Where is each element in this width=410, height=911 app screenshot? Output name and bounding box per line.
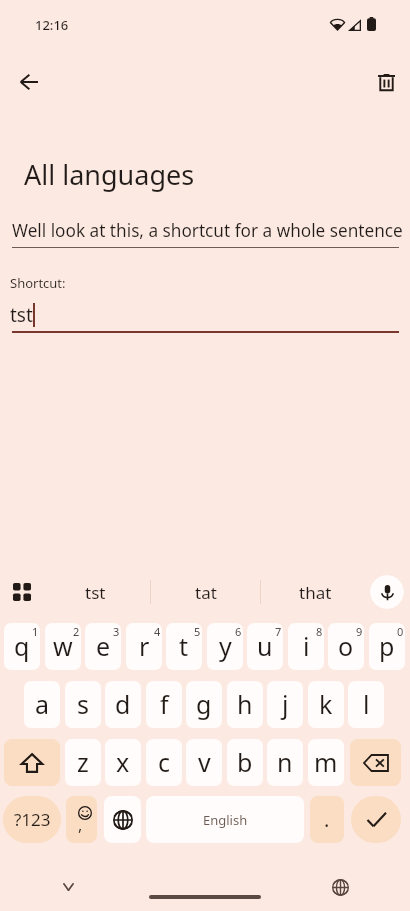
button[interactable]: . [310,796,344,843]
staticText: 8 [316,624,323,639]
button[interactable]: Switch input method [324,871,357,904]
staticText: 3 [113,624,120,639]
button[interactable]: Enter [351,796,401,843]
button[interactable]: d [105,681,141,728]
staticText: o [338,629,354,663]
button[interactable]: Back [5,58,53,106]
staticText: e [96,629,111,663]
button[interactable]: u [247,623,283,670]
button[interactable]: tst [40,571,150,613]
staticText: 7 [275,624,282,639]
button[interactable]: Change keyboard language [104,796,141,843]
staticText: s [77,687,89,721]
button[interactable]: l [348,681,384,728]
button[interactable]: w [45,623,81,670]
staticText: All languages [24,156,195,193]
staticText: q [14,629,30,663]
button[interactable]: y [207,623,243,670]
staticText: 4 [154,624,161,639]
staticText: p [379,629,395,663]
button[interactable]: ?123 [3,796,61,843]
button[interactable]: s [65,681,101,728]
staticText: 6 [235,624,242,639]
staticText: n [277,745,293,779]
staticText: t [179,629,189,663]
button[interactable]: tat [151,571,260,613]
staticText: u [257,629,273,663]
staticText: , [78,814,83,836]
button[interactable]: g [186,681,222,728]
button[interactable]: Voice input [370,575,404,609]
staticText: y [219,629,232,663]
staticText: tst [10,302,33,328]
button[interactable]: z [65,739,101,786]
staticText: h [237,687,253,721]
staticText: ?123 [14,808,51,831]
staticText: Well look at this, a shortcut for a whol… [12,219,403,242]
staticText: a [35,687,50,721]
staticText: 2 [73,624,80,639]
staticText: 5 [194,624,201,639]
button[interactable]: Delete [364,60,408,104]
staticText: v [198,745,211,779]
staticText: that [299,581,332,604]
staticText: f [160,687,169,721]
button[interactable]: h [227,681,263,728]
button[interactable]: o [328,623,364,670]
staticText: x [116,745,130,779]
button[interactable]: Shift [4,739,60,786]
button[interactable]: b [227,739,263,786]
button[interactable]: Hide keyboard [52,871,84,903]
staticText: 12:16 [35,16,69,34]
button[interactable]: c [146,739,182,786]
staticText: tat [195,581,217,604]
button[interactable]: a [24,681,60,728]
staticText: g [196,687,212,721]
staticText: i [303,629,310,663]
staticText: z [77,745,89,779]
button[interactable]: t [166,623,202,670]
button[interactable]: that [261,571,370,613]
button[interactable]: x [105,739,141,786]
button[interactable]: Backspace [350,739,401,786]
button[interactable]: Emoji [66,796,97,843]
staticText: w [53,629,73,663]
button[interactable]: j [267,681,303,728]
staticText: m [314,745,338,779]
button[interactable]: f [146,681,182,728]
staticText: c [158,745,171,779]
staticText: l [363,687,370,721]
button[interactable]: v [186,739,222,786]
button[interactable]: q [4,623,40,670]
button[interactable]: p [369,623,405,670]
button[interactable]: r [126,623,162,670]
button[interactable]: Toolbar [4,574,40,610]
button[interactable]: English [146,796,304,843]
staticText: 9 [356,624,363,639]
staticText: Shortcut: [10,274,66,292]
staticText: 0 [397,624,404,639]
staticText: English [203,811,248,829]
staticText: b [237,745,253,779]
button[interactable]: k [308,681,344,728]
staticText: k [319,687,333,721]
staticText: . [324,806,330,833]
staticText: 1 [32,624,39,639]
staticText: tst [85,581,106,604]
staticText: r [139,629,150,663]
staticText: j [282,687,289,721]
button[interactable]: e [85,623,121,670]
button[interactable]: m [308,739,344,786]
button[interactable]: i [288,623,324,670]
staticText: d [115,687,131,721]
button[interactable]: n [267,739,303,786]
